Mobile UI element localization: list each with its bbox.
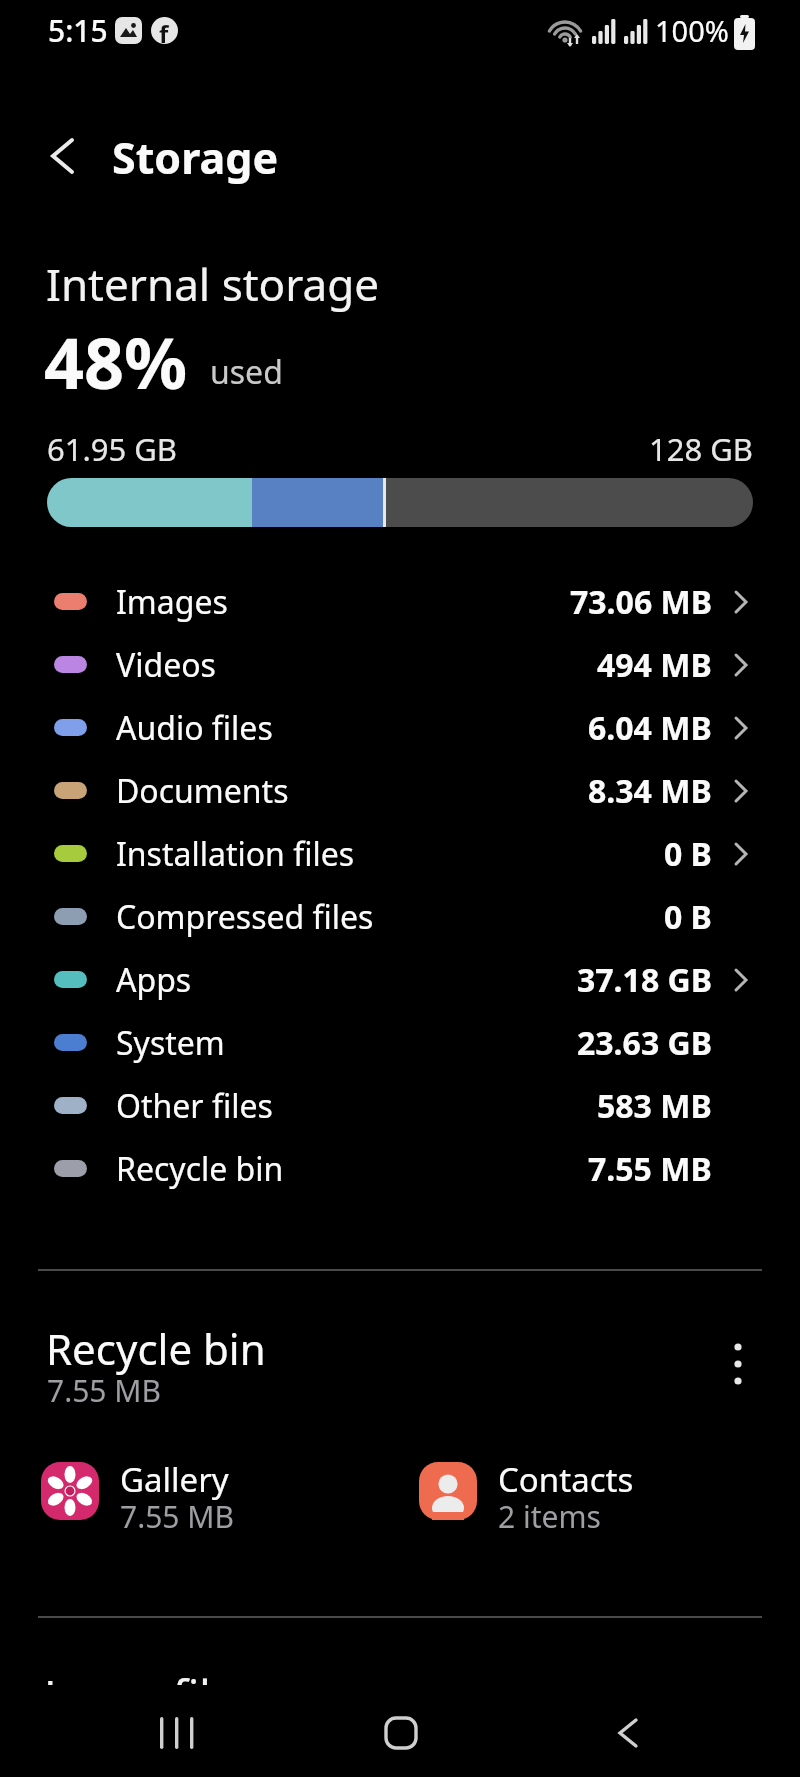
staticText: f xyxy=(159,17,169,50)
button[interactable] xyxy=(712,1330,764,1398)
staticText: Videos xyxy=(116,643,216,687)
button[interactable]: Recycle bin xyxy=(0,1310,800,1420)
staticText: 0 B xyxy=(664,895,712,939)
staticText: used xyxy=(210,350,283,394)
staticText: 0 B xyxy=(664,832,712,876)
button[interactable]: System xyxy=(0,1011,800,1074)
staticText: Recycle bin xyxy=(116,1147,284,1191)
staticText: Internal storage xyxy=(46,254,380,314)
button[interactable] xyxy=(353,1703,449,1763)
staticText: 7.55 MB xyxy=(120,1496,235,1537)
staticText: 494 MB xyxy=(597,643,712,687)
button[interactable] xyxy=(580,1703,676,1763)
button[interactable]: Contacts xyxy=(408,1452,748,1534)
button[interactable]: Other files xyxy=(0,1074,800,1137)
staticText: Contacts xyxy=(498,1457,634,1502)
staticText: Gallery xyxy=(120,1457,229,1502)
staticText: 7.55 MB xyxy=(47,1370,162,1411)
staticText: 5:15 xyxy=(48,10,108,51)
button[interactable]: Documents xyxy=(0,759,800,822)
staticText: 61.95 GB xyxy=(47,428,178,470)
staticText: 100% xyxy=(655,11,729,50)
button[interactable]: Videos xyxy=(0,633,800,696)
button[interactable]: Images xyxy=(0,570,800,633)
staticText: 8.34 MB xyxy=(588,769,712,813)
staticText: 73.06 MB xyxy=(570,580,712,624)
staticText: Large files xyxy=(44,1665,257,1685)
staticText: Other files xyxy=(116,1084,273,1128)
staticText: Compressed files xyxy=(116,895,374,939)
staticText: Apps xyxy=(116,958,192,1002)
staticText: 7.55 MB xyxy=(588,1147,712,1191)
staticText: Audio files xyxy=(116,706,273,750)
staticText: Recycle bin xyxy=(46,1320,266,1377)
staticText: Storage xyxy=(112,128,279,187)
button[interactable]: Recycle bin xyxy=(0,1137,800,1200)
staticText: 2 items xyxy=(498,1496,601,1537)
staticText: Documents xyxy=(116,769,289,813)
staticText: 583 MB xyxy=(597,1084,712,1128)
staticText: Images xyxy=(116,580,228,624)
staticText: 48% xyxy=(44,314,188,409)
button[interactable]: Installation files xyxy=(0,822,800,885)
button[interactable]: Gallery xyxy=(30,1452,370,1534)
button[interactable]: Audio files xyxy=(0,696,800,759)
button[interactable]: Apps xyxy=(0,948,800,1011)
staticText: 23.63 GB xyxy=(577,1021,712,1065)
staticText: Installation files xyxy=(116,832,355,876)
staticText: System xyxy=(116,1021,225,1065)
staticText: 128 GB xyxy=(649,428,753,470)
staticText: 37.18 GB xyxy=(577,958,712,1002)
button[interactable]: Compressed files xyxy=(0,885,800,948)
staticText: 6.04 MB xyxy=(588,706,712,750)
button[interactable] xyxy=(34,128,90,184)
button[interactable] xyxy=(130,1703,226,1763)
